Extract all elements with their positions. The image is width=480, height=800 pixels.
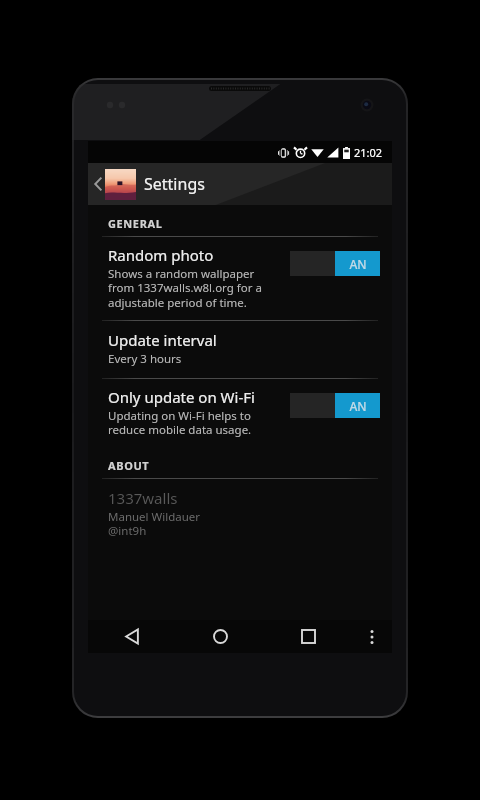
button[interactable]: Toggle, on	[290, 251, 380, 276]
button[interactable]: Random photo	[88, 237, 392, 320]
staticText: Updating on Wi-Fi helps to reduce mobile…	[108, 408, 252, 438]
staticText: Every 3 hours	[108, 351, 182, 367]
staticText: Shows a random wallpaper from 1337walls.…	[108, 266, 262, 311]
other: Navigate up	[94, 176, 103, 192]
staticText: GENERAL	[108, 216, 163, 231]
button[interactable]: Only update on Wi-Fi	[88, 379, 392, 447]
staticText: AN	[349, 398, 367, 414]
staticText: Update interval	[108, 330, 217, 350]
staticText: ABOUT	[108, 458, 150, 473]
staticText: 1337walls	[108, 488, 178, 508]
button[interactable]: Toggle, on	[290, 393, 380, 418]
button[interactable]: Update interval	[88, 321, 392, 378]
button[interactable]: Recent apps	[264, 620, 352, 653]
button[interactable]: More options	[352, 620, 392, 653]
staticText: Settings	[144, 173, 205, 195]
button[interactable]: Back	[88, 620, 176, 653]
staticText: 21:02	[354, 145, 383, 160]
button[interactable]: Home	[176, 620, 264, 653]
staticText: Only update on Wi-Fi	[108, 387, 255, 407]
button[interactable]: Navigate up	[88, 163, 205, 205]
staticText: AN	[349, 256, 367, 272]
staticText: Random photo	[108, 245, 214, 265]
staticText: Manuel Wildauer @int9h	[108, 509, 201, 539]
